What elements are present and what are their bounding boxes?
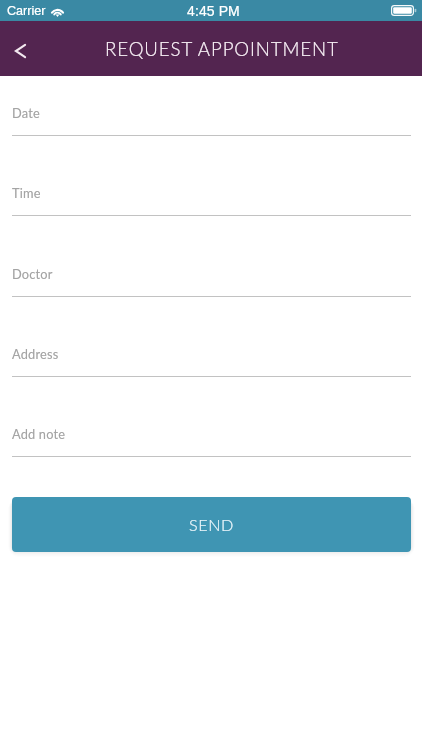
button[interactable]: Back — [0, 21, 46, 76]
staticText: Add note — [12, 426, 66, 441]
staticText: REQUEST APPOINTMENT — [105, 38, 339, 60]
staticText: SEND — [189, 515, 234, 534]
staticText: Address — [12, 346, 59, 361]
staticText: 4:45 PM — [187, 3, 240, 19]
staticText: Doctor — [12, 266, 53, 281]
button[interactable]: Date — [12, 99, 411, 136]
staticText: Date — [12, 105, 40, 120]
button[interactable]: Add note — [12, 420, 411, 457]
staticText: Time — [12, 185, 41, 200]
staticText: Carrier — [7, 4, 46, 18]
button[interactable]: SEND — [12, 497, 411, 552]
button[interactable]: Address — [12, 340, 411, 377]
button[interactable]: Doctor — [12, 260, 411, 297]
button[interactable]: Time — [12, 179, 411, 216]
